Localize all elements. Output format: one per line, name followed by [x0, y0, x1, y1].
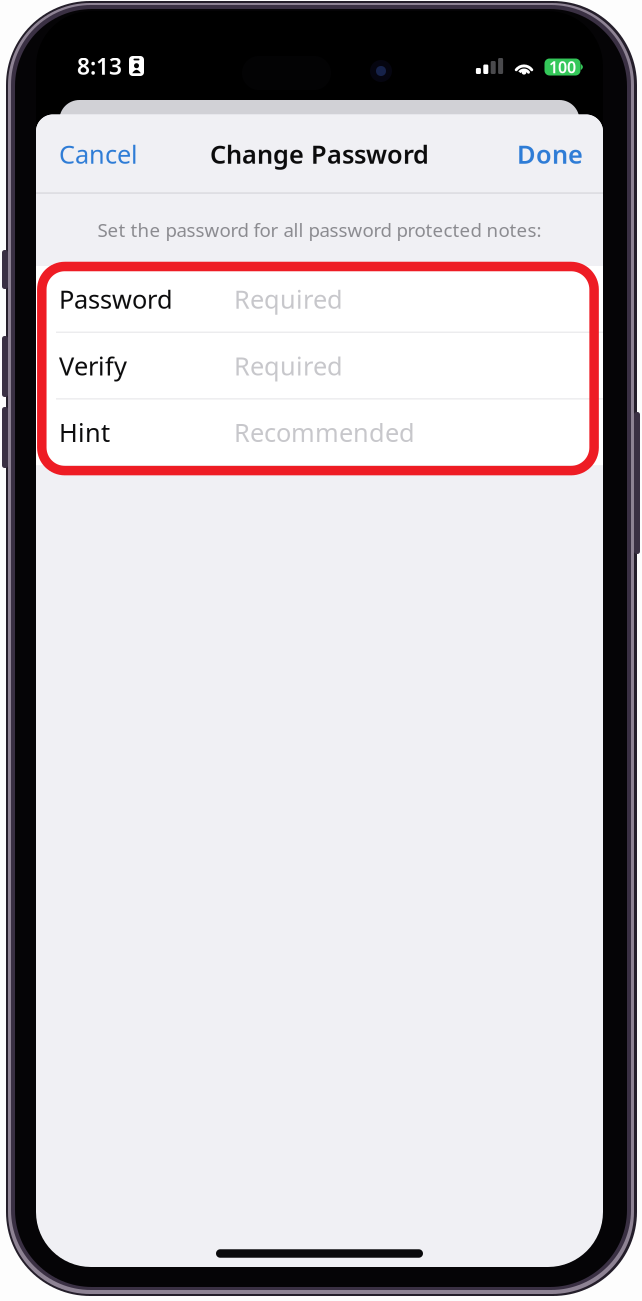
staticText: Hint	[59, 415, 110, 449]
staticText: Cancel	[59, 137, 138, 171]
staticText: Verify	[59, 349, 127, 382]
staticText: 8:13	[77, 51, 122, 81]
staticText: 100	[549, 56, 576, 78]
staticText: Done	[517, 137, 583, 171]
button[interactable]: Password	[36, 266, 603, 332]
staticText: Password	[59, 282, 173, 316]
button[interactable]: Cancel	[53, 124, 144, 184]
button[interactable]: Done	[511, 124, 589, 184]
staticText: Set the password for all password protec…	[97, 217, 541, 242]
staticText: Recommended	[234, 415, 415, 449]
staticText: Required	[234, 282, 343, 316]
button[interactable]: Verify	[36, 333, 603, 398]
button[interactable]: Hint	[36, 399, 603, 465]
staticText: Required	[234, 349, 343, 382]
staticText: Change Password	[210, 137, 429, 171]
